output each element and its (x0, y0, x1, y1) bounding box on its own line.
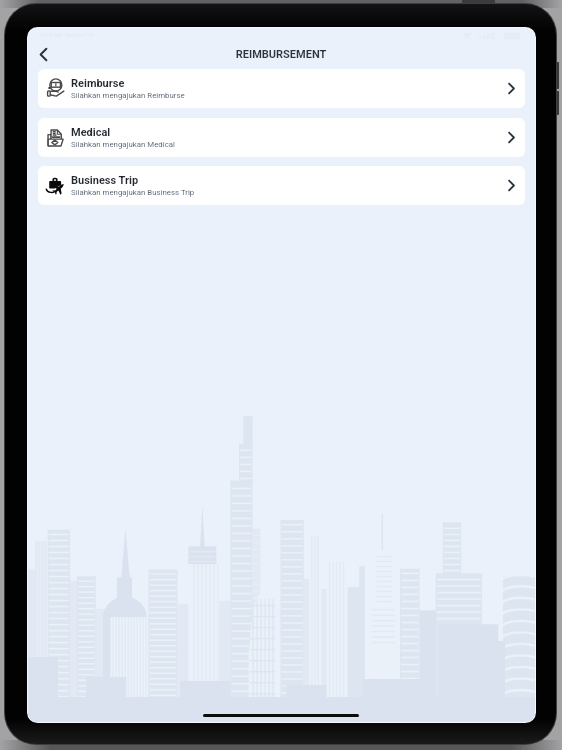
button[interactable]: Back (31, 42, 55, 66)
staticText: REIMBURSEMENT (231, 48, 331, 61)
staticText: Reimburse (71, 77, 125, 90)
button[interactable]: Medical (38, 118, 525, 157)
staticText: Silahkan mengajukan Reimburse (71, 91, 185, 100)
staticText: Medical (71, 126, 111, 139)
staticText: Silahkan mengajukan Medical (71, 140, 175, 149)
button[interactable]: Reimburse (38, 69, 525, 108)
button[interactable]: Business Trip (38, 166, 525, 205)
staticText: Business Trip (71, 174, 139, 187)
staticText: Silahkan mengajukan Business Trip (71, 188, 195, 197)
